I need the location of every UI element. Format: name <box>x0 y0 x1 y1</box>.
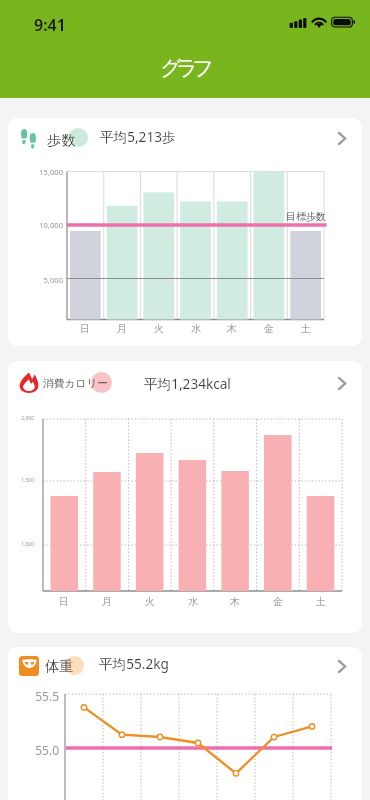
staticText: 水 <box>181 322 211 335</box>
staticText: 日 <box>49 595 79 608</box>
staticText: 月 <box>107 322 137 335</box>
staticText: グラフ <box>160 55 209 81</box>
staticText: 日 <box>70 322 100 335</box>
staticText: 水 <box>178 595 208 608</box>
staticText: 金 <box>263 595 293 608</box>
staticText: 体重 <box>45 657 74 675</box>
staticText: 平均1,234kcal <box>144 374 231 393</box>
button[interactable]: 詳細を見る <box>325 650 357 682</box>
staticText: 10,000 <box>3 220 63 230</box>
button[interactable]: 詳細を見る <box>325 367 357 399</box>
button[interactable]: 歩数 <box>8 116 362 159</box>
staticText: 火 <box>135 595 165 608</box>
button[interactable]: 詳細を見る <box>325 122 357 154</box>
staticText: 歩数 <box>47 131 76 149</box>
staticText: 土 <box>306 595 336 608</box>
staticText: 木 <box>217 322 247 335</box>
staticText: 平均5,213歩 <box>100 127 176 146</box>
staticText: 1,500 <box>0 477 34 484</box>
staticText: 金 <box>254 322 284 335</box>
staticText: 55.5 <box>0 688 59 704</box>
staticText: 火 <box>144 322 174 335</box>
staticText: 目標歩数 <box>286 210 326 223</box>
staticText: 15,000 <box>3 167 63 177</box>
staticText: 土 <box>291 322 321 335</box>
staticText: 2,000 <box>0 415 34 422</box>
staticText: 55.0 <box>0 742 59 758</box>
button[interactable]: 消費カロリー <box>8 361 362 404</box>
staticText: 月 <box>92 595 122 608</box>
staticText: 消費カロリー <box>43 377 108 390</box>
staticText: 9:41 <box>34 14 66 36</box>
staticText: 5,000 <box>3 275 63 285</box>
staticText: 平均55.2kg <box>99 654 169 673</box>
staticText: 1,000 <box>0 541 34 548</box>
staticText: 木 <box>220 595 250 608</box>
button[interactable]: 体重 <box>8 644 362 687</box>
